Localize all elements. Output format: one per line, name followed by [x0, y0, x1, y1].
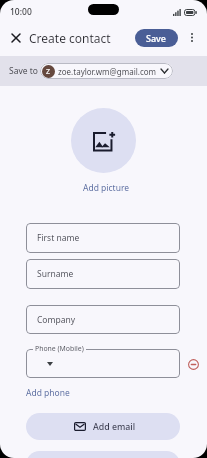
button[interactable]: Surname: [26, 259, 180, 289]
button[interactable]: Z: [40, 63, 173, 79]
button[interactable]: Add picture: [71, 108, 136, 173]
button[interactable]: Add address: [26, 451, 180, 458]
staticText: Phone (Mobile): [35, 344, 84, 353]
staticText: Save to: [9, 65, 38, 77]
staticText: zoe.taylor.wm@gmail.com: [58, 66, 157, 77]
staticText: Z: [46, 67, 51, 77]
staticText: Add phone: [26, 387, 70, 399]
staticText: Add email: [93, 421, 136, 433]
button[interactable]: First name: [26, 223, 180, 253]
button[interactable]: Close: [5, 27, 26, 48]
button[interactable]: Add email: [26, 413, 180, 440]
button[interactable]: Remove phone: [184, 355, 203, 374]
staticText: Add picture: [83, 182, 130, 194]
staticText: 10:00: [10, 6, 32, 18]
button[interactable]: More options: [182, 28, 201, 47]
staticText: Create contact: [29, 30, 111, 46]
button[interactable]: Company: [26, 305, 180, 334]
button[interactable]: [26, 349, 180, 378]
staticText: First name: [37, 232, 80, 244]
staticText: Surname: [37, 268, 74, 280]
staticText: Company: [37, 314, 76, 326]
staticText: Save: [146, 32, 167, 44]
button[interactable]: Save: [135, 29, 178, 47]
button[interactable]: Add phone: [22, 384, 74, 402]
